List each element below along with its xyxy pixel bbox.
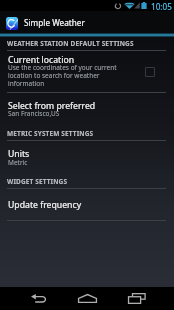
button[interactable]: Recent apps: [121, 287, 152, 310]
button[interactable]: [0, 93, 174, 123]
staticText: Current location: [8, 54, 75, 66]
staticText: San Francisco,US: [8, 109, 60, 118]
staticText: 10:05: [151, 1, 172, 12]
staticText: Use the coordinates of your current loca…: [8, 63, 117, 88]
button[interactable]: [0, 141, 174, 171]
staticText: WIDGET SETTINGS: [7, 177, 68, 186]
button[interactable]: [0, 51, 174, 93]
button[interactable]: [0, 189, 174, 220]
staticText: Select from preferred: [8, 100, 96, 112]
button[interactable]: Use current location: [145, 67, 155, 77]
staticText: Update frequency: [8, 199, 82, 211]
button[interactable]: App icon: [6, 17, 18, 30]
staticText: Units: [8, 148, 30, 160]
button[interactable]: Home: [72, 287, 103, 310]
staticText: METRIC SYSTEM SETTINGS: [7, 129, 94, 138]
button[interactable]: Back: [23, 287, 54, 310]
staticText: Simple Weather: [24, 17, 85, 28]
staticText: WEATHER STATION DEFAULT SETTINGS: [7, 39, 134, 48]
staticText: Metric: [8, 158, 28, 167]
